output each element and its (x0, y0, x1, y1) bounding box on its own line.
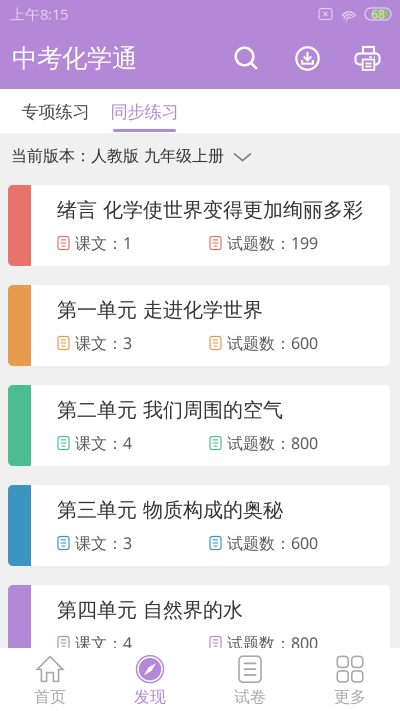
button[interactable]: 同步练习 (100, 89, 189, 133)
button[interactable]: 绪言 化学使世界变得更加绚丽多彩 (8, 185, 390, 266)
staticText: 试题数：800 (227, 432, 318, 454)
button[interactable]: 当前版本：人教版 九年级上册 (0, 133, 400, 179)
staticText: 发现 (134, 687, 166, 707)
button[interactable]: 搜索 (216, 29, 277, 87)
staticText: 同步练习 (110, 101, 178, 123)
button[interactable]: 打印 (338, 29, 399, 87)
staticText: 课文：3 (75, 532, 132, 554)
button[interactable]: 第三单元 物质构成的奥秘 (8, 485, 390, 566)
button[interactable]: 专项练习 (11, 89, 100, 133)
button[interactable]: 发现 (100, 648, 200, 711)
staticText: 试题数：199 (227, 232, 318, 254)
button[interactable]: 第二单元 我们周围的空气 (8, 385, 390, 466)
staticText: 当前版本：人教版 九年级上册 (11, 146, 224, 166)
staticText: 第三单元 物质构成的奥秘 (57, 498, 283, 522)
staticText: 首页 (34, 687, 66, 707)
staticText: 课文：4 (75, 632, 132, 654)
button[interactable]: 第一单元 走进化学世界 (8, 285, 390, 366)
staticText: 68 (371, 6, 385, 22)
staticText: 试题数：800 (227, 632, 318, 654)
button[interactable]: 第四单元 自然界的水 (8, 585, 390, 666)
staticText: 第一单元 走进化学世界 (57, 298, 263, 322)
button[interactable]: 试卷 (200, 648, 300, 711)
staticText: 试题数：600 (227, 332, 318, 354)
staticText: 第二单元 我们周围的空气 (57, 398, 283, 422)
button[interactable]: 下载 (277, 29, 338, 87)
staticText: 课文：1 (75, 232, 132, 254)
staticText: 试卷 (234, 687, 266, 707)
staticText: 专项练习 (21, 101, 89, 123)
staticText: 试题数：600 (227, 532, 318, 554)
staticText: 课文：4 (75, 432, 132, 454)
staticText: 更多 (334, 687, 366, 707)
button[interactable]: 首页 (0, 648, 100, 711)
button[interactable]: 更多 (300, 648, 400, 711)
staticText: 绪言 化学使世界变得更加绚丽多彩 (57, 198, 363, 222)
staticText: 第四单元 自然界的水 (57, 598, 243, 622)
staticText: 中考化学通 (12, 43, 137, 74)
staticText: 上午8:15 (10, 4, 68, 24)
staticText: 课文：3 (75, 332, 132, 354)
